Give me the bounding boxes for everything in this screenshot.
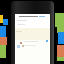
button[interactable] xyxy=(15,14,50,19)
